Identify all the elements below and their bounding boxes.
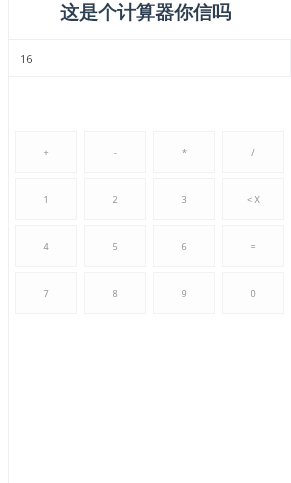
button[interactable]: + (15, 131, 77, 173)
button[interactable]: 0 (222, 272, 284, 314)
button[interactable]: 7 (15, 272, 77, 314)
staticText: / (251, 146, 255, 158)
button[interactable]: 8 (84, 272, 146, 314)
button[interactable]: 1 (15, 178, 77, 220)
staticText: 0 (250, 287, 256, 299)
staticText: * (182, 146, 187, 158)
button[interactable]: 4 (15, 225, 77, 267)
button[interactable]: 3 (153, 178, 215, 220)
staticText: 这是个计算器你信吗 (60, 1, 231, 25)
staticText: 8 (112, 287, 118, 299)
staticText: = (250, 240, 256, 252)
staticText: 7 (43, 287, 49, 299)
staticText: 6 (181, 240, 187, 252)
button[interactable]: < X (222, 178, 284, 220)
button[interactable]: 5 (84, 225, 146, 267)
button[interactable]: / (222, 131, 284, 173)
staticText: 1 (43, 193, 49, 205)
staticText: 4 (43, 240, 49, 252)
staticText: + (43, 146, 49, 158)
staticText: 2 (112, 193, 118, 205)
staticText: 9 (181, 287, 187, 299)
button[interactable]: * (153, 131, 215, 173)
staticText: < X (247, 193, 260, 205)
staticText: 16 (20, 51, 33, 66)
staticText: 5 (112, 240, 118, 252)
button[interactable]: - (84, 131, 146, 173)
button[interactable]: 9 (153, 272, 215, 314)
button[interactable]: = (222, 225, 284, 267)
staticText: 3 (181, 193, 187, 205)
staticText: - (114, 146, 117, 158)
button[interactable]: 16 (8, 39, 291, 77)
button[interactable]: 6 (153, 225, 215, 267)
button[interactable]: 2 (84, 178, 146, 220)
